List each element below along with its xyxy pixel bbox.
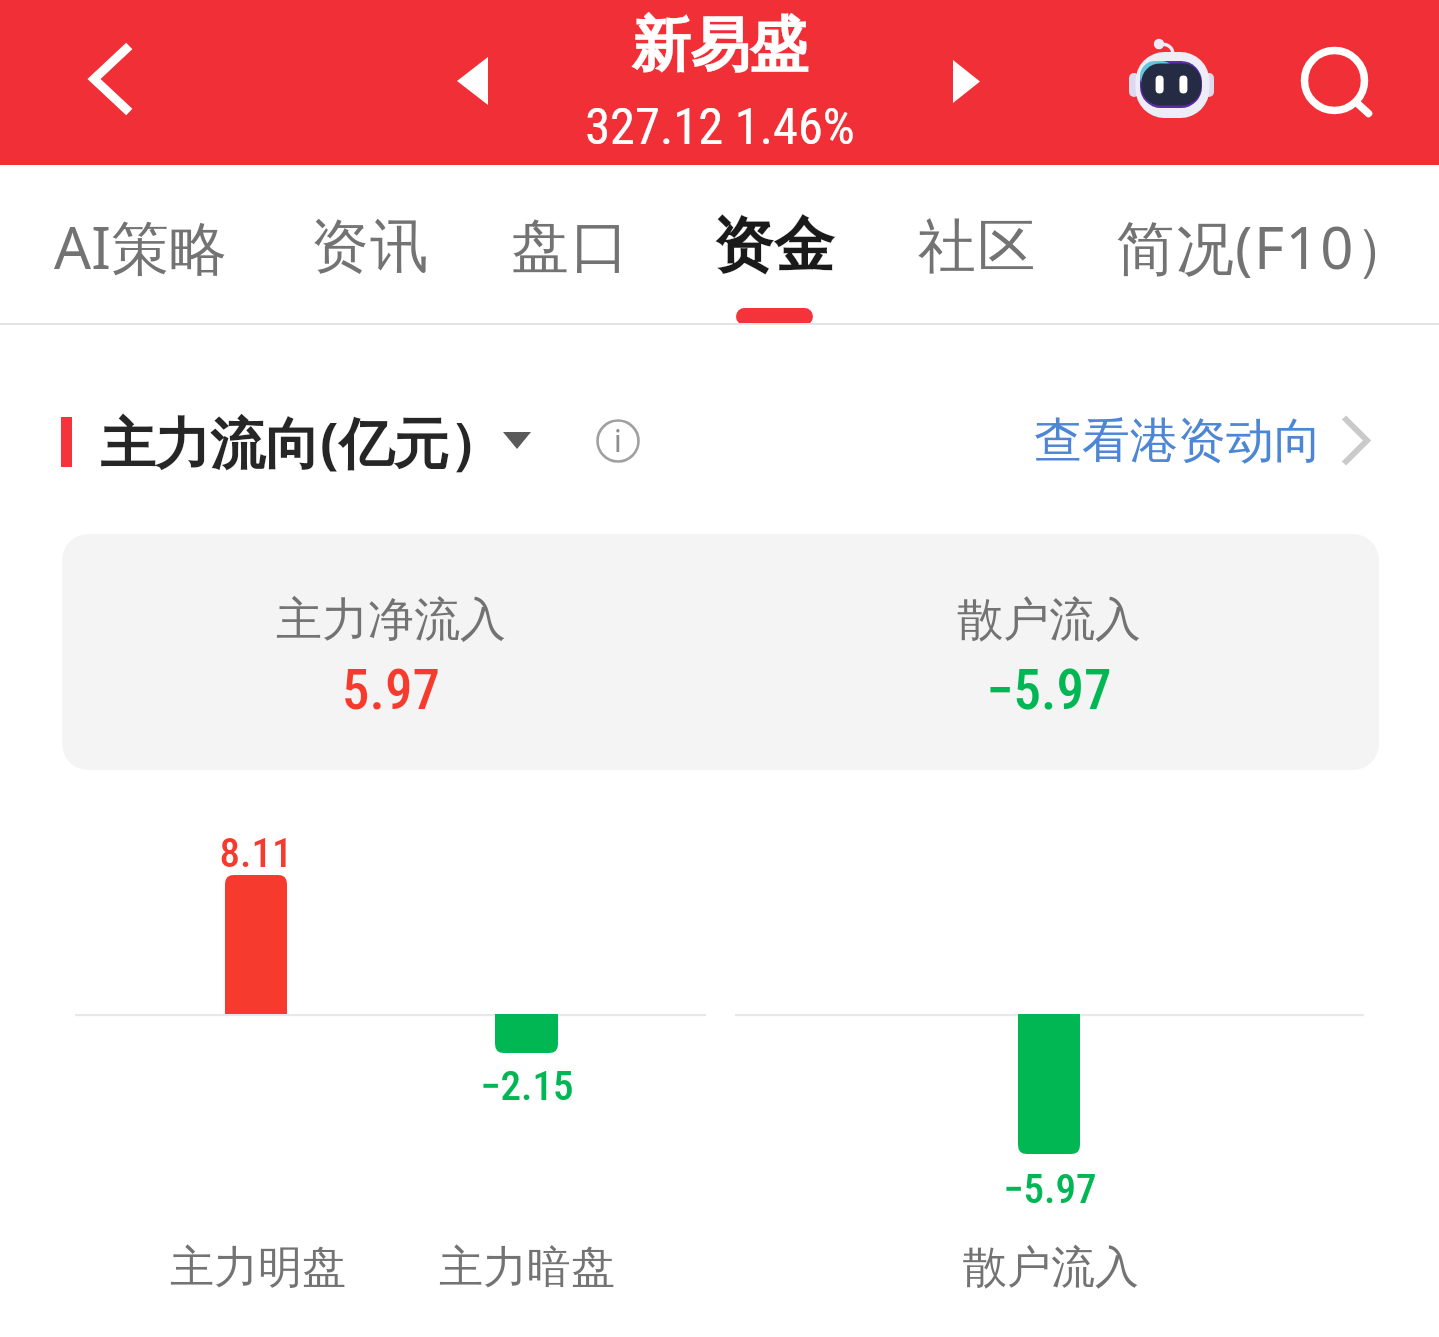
staticText: −5.97 [749,658,1349,722]
button[interactable]: 社区 [806,194,1146,298]
staticText: 资金 [712,208,835,284]
staticText: −5.97 [750,1165,1350,1213]
staticText: 新易盛 [420,8,1020,82]
staticText: 8.11 [0,829,556,877]
button[interactable]: 主力净流入 [62,534,1379,770]
button[interactable]: Back [40,29,140,129]
staticText: AI策略 [54,207,228,286]
staticText: 主力暗盘 [227,1240,827,1295]
button[interactable]: 资讯 [199,194,539,298]
button[interactable]: 资金 [603,194,943,298]
button[interactable]: 主力流向(亿元） [55,400,540,482]
staticText: 327.12 1.46% [420,97,1020,156]
button[interactable]: Info [592,415,644,467]
staticText: 散户流入 [751,1240,1351,1295]
button[interactable]: 简况(F10） [1095,194,1435,298]
staticText: 查看港资动向 [1034,411,1322,471]
button[interactable]: Search [1284,30,1384,130]
staticText: 主力流向(亿元） [100,404,504,479]
staticText: 主力净流入 [91,591,691,649]
staticText: 盘口 [510,210,630,283]
staticText: 散户流入 [749,591,1349,649]
staticText: i [614,420,622,461]
staticText: 5.97 [91,658,691,722]
staticText: 社区 [917,210,1036,283]
staticText: 简况(F10） [1116,207,1415,286]
button[interactable]: Next stock [923,51,1013,111]
staticText: 资讯 [310,210,429,283]
button[interactable]: Previous stock [427,51,518,111]
button[interactable]: 盘口 [400,194,740,298]
button[interactable]: 查看港资动向 [1024,404,1390,478]
button[interactable]: AI策略 [0,194,311,298]
staticText: 主力明盘 [0,1240,558,1295]
button[interactable]: AI assistant [1111,24,1231,144]
staticText: −2.15 [227,1062,827,1110]
